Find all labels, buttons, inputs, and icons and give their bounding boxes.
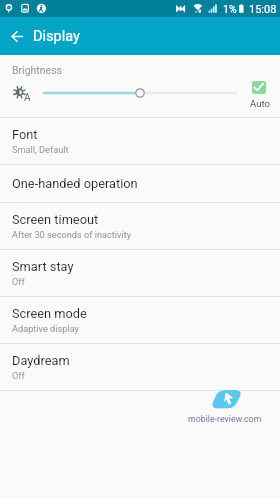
staticText: 1% — [223, 3, 237, 15]
staticText: Screen mode — [12, 306, 87, 321]
button[interactable]: One-handed operation — [0, 165, 280, 202]
staticText: After 30 seconds of inactivity — [12, 229, 132, 240]
staticText: mobile-review.com — [188, 414, 262, 424]
staticText: Adaptive display — [12, 323, 79, 334]
staticText: A — [24, 92, 31, 104]
button[interactable]: Navigate up — [0, 17, 34, 55]
staticText: Smart stay — [12, 259, 74, 274]
button[interactable]: Auto — [246, 78, 270, 110]
staticText: Auto — [250, 98, 270, 109]
button[interactable]: Smart stay — [0, 250, 280, 296]
button[interactable]: Daydream — [0, 344, 280, 390]
staticText: Brightness — [12, 64, 62, 76]
staticText: Font — [12, 127, 38, 142]
staticText: Off — [12, 370, 25, 381]
staticText: Screen timeout — [12, 212, 99, 227]
button[interactable]: Screen timeout — [0, 203, 280, 249]
staticText: Daydream — [12, 353, 70, 368]
staticText: Small, Default — [12, 144, 69, 155]
button[interactable]: Screen mode — [0, 297, 280, 343]
staticText: Display — [33, 28, 80, 45]
staticText: Off — [12, 276, 25, 287]
button[interactable]: Font — [0, 118, 280, 164]
staticText: 15:08 — [249, 3, 277, 16]
staticText: One-handed operation — [12, 176, 138, 191]
